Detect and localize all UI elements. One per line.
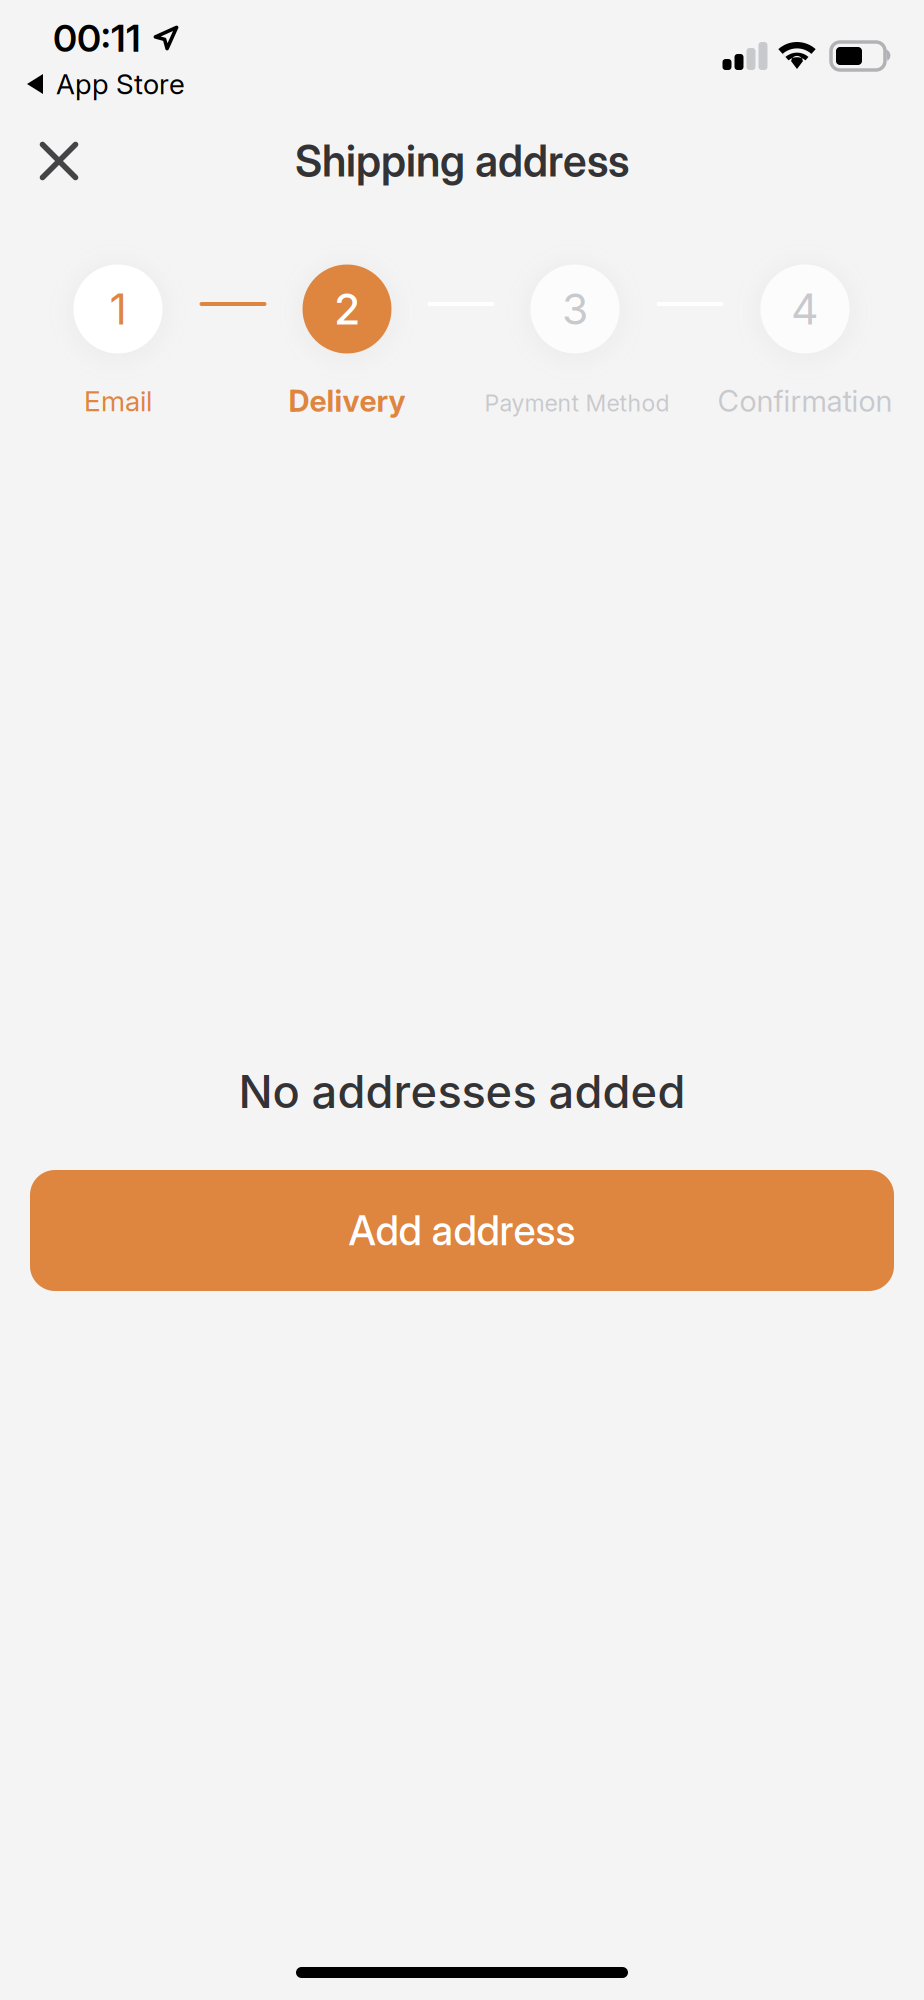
staticText: Email — [84, 384, 152, 418]
button[interactable]: Add address — [30, 1170, 894, 1291]
staticText: 00:11 — [53, 15, 141, 61]
staticText: 3 — [562, 283, 588, 335]
staticText: 1 — [109, 283, 126, 335]
staticText: Add address — [348, 1206, 575, 1255]
staticText: 4 — [791, 283, 819, 335]
staticText: Payment Method — [484, 389, 669, 417]
button[interactable]: Close — [17, 119, 101, 203]
staticText: Shipping address — [295, 135, 629, 187]
staticText: 2 — [334, 283, 360, 335]
staticText: Delivery — [288, 383, 405, 419]
button[interactable]: App Store — [27, 67, 185, 101]
staticText: App Store — [56, 67, 185, 101]
staticText: No addresses added — [238, 1064, 685, 1119]
staticText: Confirmation — [717, 383, 892, 419]
